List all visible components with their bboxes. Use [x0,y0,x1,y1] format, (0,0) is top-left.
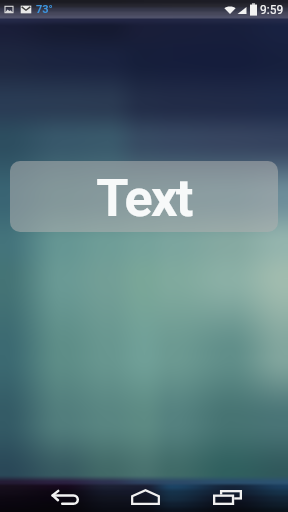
staticText: Text [96,168,192,229]
button[interactable]: Text [10,161,278,232]
staticText: 73° [36,3,53,16]
button[interactable]: Recent apps [203,482,251,512]
staticText: 9:59 [260,3,284,17]
button[interactable]: Home [121,482,169,512]
button[interactable]: Back [41,482,89,512]
